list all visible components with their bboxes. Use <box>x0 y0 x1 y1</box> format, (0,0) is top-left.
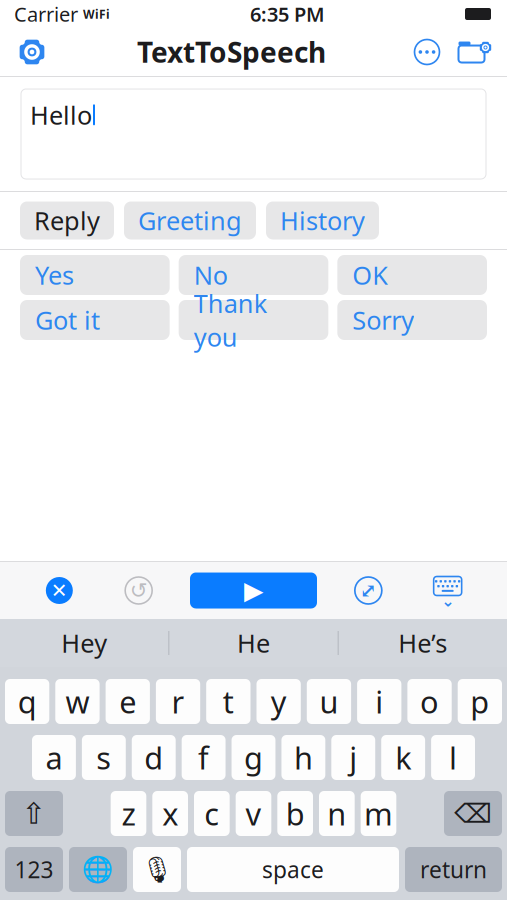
button[interactable]: b <box>277 791 313 836</box>
button[interactable]: Next keyboard <box>69 847 127 892</box>
button[interactable]: space <box>187 847 399 892</box>
button[interactable]: o <box>407 679 452 724</box>
staticText: h <box>294 737 313 778</box>
button[interactable]: 123 <box>5 847 63 892</box>
button[interactable]: n <box>319 791 355 836</box>
staticText: z <box>121 793 135 834</box>
button[interactable]: d <box>132 735 176 780</box>
staticText: Reply <box>34 204 100 237</box>
button[interactable]: y <box>256 679 301 724</box>
staticText: k <box>395 737 411 778</box>
button[interactable]: v <box>236 791 271 836</box>
staticText: m <box>364 793 393 834</box>
staticText: n <box>327 793 346 834</box>
staticText: d <box>144 737 163 778</box>
button[interactable]: Settings <box>6 30 58 74</box>
button[interactable]: More options <box>405 30 449 74</box>
button[interactable]: w <box>55 679 100 724</box>
button[interactable]: Text to speak <box>21 89 486 179</box>
staticText: g <box>244 737 263 778</box>
button[interactable]: OK <box>337 255 487 295</box>
staticText: WiFi <box>83 6 110 22</box>
button[interactable]: c <box>194 791 230 836</box>
button[interactable]: h <box>281 735 325 780</box>
staticText: o <box>420 681 439 722</box>
staticText: ⌫ <box>454 798 492 829</box>
button[interactable]: z <box>111 791 146 836</box>
button[interactable]: No <box>179 255 328 295</box>
button[interactable]: Thank you <box>179 300 328 340</box>
staticText: s <box>96 737 111 778</box>
button[interactable]: u <box>307 679 351 724</box>
staticText: Sorry <box>352 303 414 337</box>
staticText: a <box>45 737 62 778</box>
staticText: OK <box>352 258 388 292</box>
staticText: x <box>162 793 178 834</box>
button[interactable]: Shift <box>5 791 63 836</box>
staticText: ▶ <box>244 576 263 605</box>
staticText: 🌐 <box>82 855 114 884</box>
button[interactable]: l <box>431 735 475 780</box>
button[interactable]: m <box>361 791 396 836</box>
button[interactable]: Hide keyboard <box>420 568 476 612</box>
staticText: t <box>223 681 234 722</box>
button[interactable]: e <box>106 679 150 724</box>
staticText: Hey <box>61 626 107 660</box>
staticText: ✕ <box>51 579 68 602</box>
staticText: r <box>172 681 185 722</box>
button[interactable]: i <box>357 679 401 724</box>
button[interactable]: Yes <box>20 255 170 295</box>
staticText: Carrier <box>14 1 78 27</box>
button[interactable]: Sorry <box>337 300 487 340</box>
button[interactable]: k <box>381 735 425 780</box>
button[interactable]: Expand text view <box>340 568 396 612</box>
button[interactable]: Manage phrase folders <box>449 30 501 74</box>
button[interactable]: Got it <box>20 300 170 340</box>
staticText: Got it <box>35 303 100 337</box>
button[interactable]: Undo <box>111 568 167 612</box>
staticText: y <box>271 681 287 722</box>
button[interactable]: q <box>5 679 49 724</box>
staticText: He <box>237 626 270 660</box>
staticText: p <box>470 681 489 722</box>
staticText: v <box>245 793 261 834</box>
button[interactable]: s <box>82 735 126 780</box>
staticText: u <box>319 681 338 722</box>
button[interactable]: x <box>152 791 188 836</box>
button[interactable]: History <box>266 201 379 239</box>
button[interactable]: g <box>232 735 275 780</box>
button[interactable]: He’s <box>339 619 507 667</box>
button[interactable]: Speak <box>190 572 317 608</box>
button[interactable]: f <box>182 735 226 780</box>
staticText: He’s <box>398 626 447 660</box>
button[interactable]: r <box>156 679 200 724</box>
button[interactable]: He <box>169 619 338 667</box>
staticText: ⤢ <box>360 579 377 602</box>
button[interactable]: j <box>331 735 375 780</box>
button[interactable]: Delete <box>444 791 502 836</box>
button[interactable]: Clear text <box>31 568 87 612</box>
staticText: 123 <box>14 854 53 884</box>
staticText: return <box>420 854 487 884</box>
staticText: 6:35 PM <box>250 1 325 27</box>
staticText: ↺ <box>130 578 148 603</box>
staticText: No <box>194 258 228 292</box>
staticText: space <box>262 854 324 884</box>
staticText: e <box>119 681 136 722</box>
staticText: q <box>18 681 37 722</box>
staticText: l <box>449 737 457 778</box>
button[interactable]: return <box>405 847 502 892</box>
staticText: Hello <box>30 98 92 132</box>
button[interactable]: Hey <box>0 619 168 667</box>
staticText: w <box>65 681 89 722</box>
staticText: j <box>349 737 357 778</box>
button[interactable]: a <box>32 735 76 780</box>
staticText: i <box>375 681 383 722</box>
staticText: ⇧ <box>21 797 46 830</box>
button[interactable]: Reply <box>20 201 114 239</box>
staticText: History <box>280 204 365 237</box>
button[interactable]: t <box>206 679 250 724</box>
button[interactable]: p <box>458 679 502 724</box>
button[interactable]: Dictation <box>133 847 181 892</box>
button[interactable]: Greeting <box>124 201 256 239</box>
